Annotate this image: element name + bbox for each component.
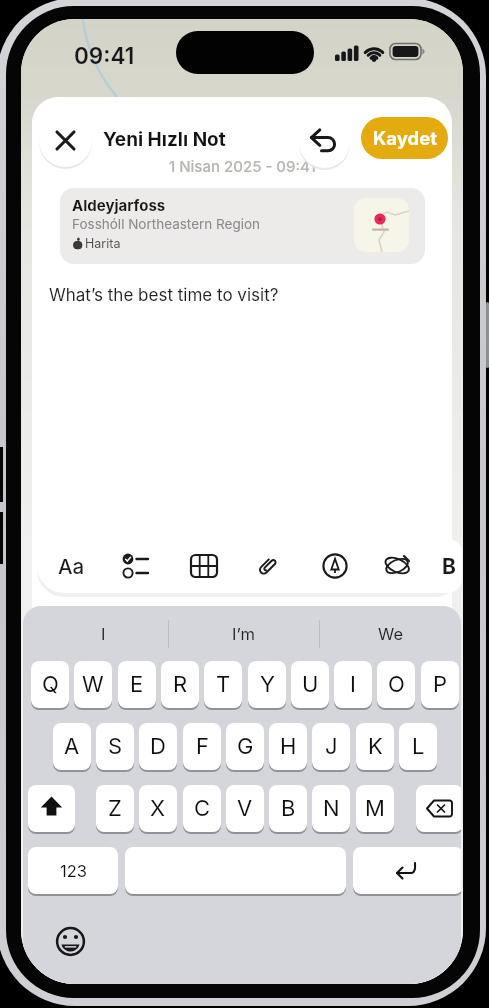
staticText: Yeni Hızlı Not [103, 128, 226, 151]
staticText: I [101, 624, 106, 644]
staticText: R [173, 671, 188, 698]
staticText: 123 [60, 861, 87, 881]
staticText: E [130, 671, 144, 698]
staticText: P [433, 671, 448, 698]
staticText: 1 Nisan 2025 - 09:41 [169, 157, 316, 175]
staticText: Harita [85, 236, 121, 251]
staticText: G [237, 733, 254, 760]
staticText: H [280, 733, 297, 760]
staticText: F [196, 733, 209, 760]
staticText: C [194, 795, 211, 822]
staticText: S [108, 733, 123, 760]
staticText: U [302, 671, 319, 698]
staticText: M [365, 795, 385, 822]
staticText: I’m [232, 624, 255, 644]
staticText: Y [260, 671, 275, 698]
staticText: B [281, 795, 296, 822]
staticText: K [368, 733, 383, 760]
staticText: Fosshóll Northeastern Region [72, 216, 261, 232]
staticText: J [325, 733, 338, 760]
staticText: Kaydet [373, 127, 437, 149]
staticText: We [378, 624, 404, 644]
staticText: What’s the best time to visit? [49, 285, 279, 306]
staticText: T [216, 671, 231, 698]
staticText: O [388, 671, 405, 698]
staticText: Z [108, 795, 122, 822]
staticText: Aldeyjarfoss [72, 196, 166, 214]
staticText: B [442, 554, 456, 579]
staticText: W [82, 671, 104, 698]
staticText: I [350, 671, 356, 698]
staticText: A [64, 733, 80, 760]
staticText: V [237, 795, 253, 822]
staticText: Aa [58, 554, 85, 579]
staticText: Q [42, 671, 59, 698]
staticText: D [150, 733, 166, 760]
staticText: L [412, 733, 425, 760]
staticText: 09:41 [74, 42, 135, 69]
staticText: N [323, 795, 340, 822]
staticText: X [150, 795, 166, 822]
